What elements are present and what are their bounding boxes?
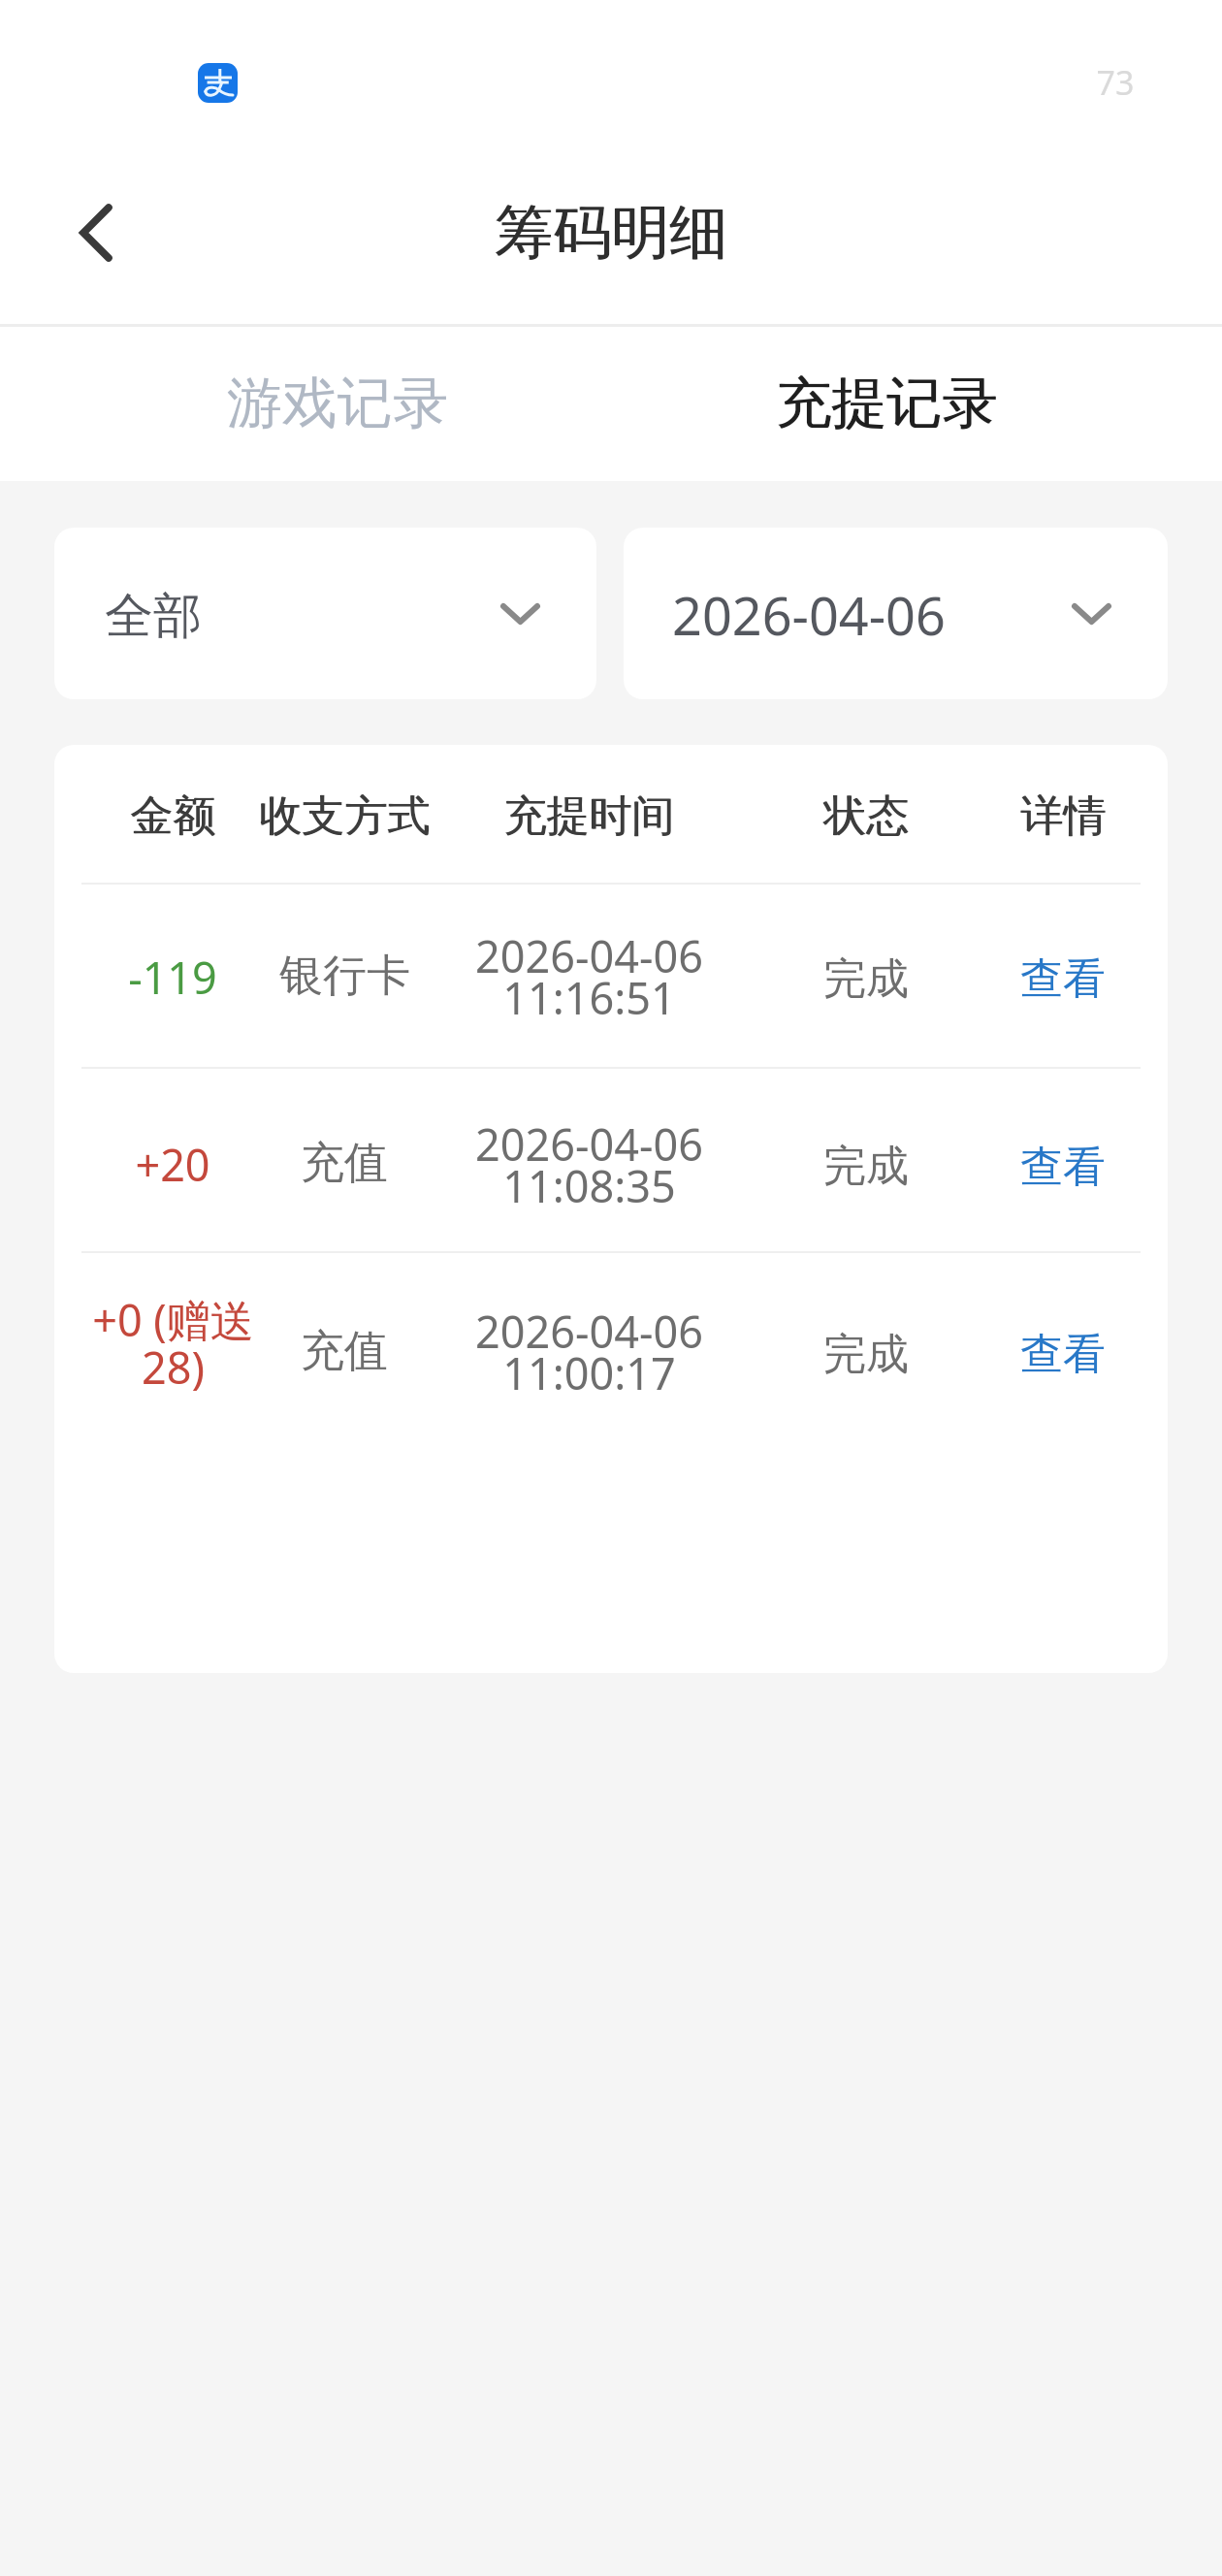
staticText: 充提记录 — [776, 369, 997, 438]
staticText: 详情 — [966, 789, 1160, 843]
staticText: 收支方式 — [239, 789, 452, 843]
staticText: 2026-04-06 11:16:51 — [475, 926, 703, 1027]
staticText: +0 (赠送 — [92, 1290, 254, 1349]
staticText: 完成 — [823, 1328, 909, 1381]
button[interactable]: 全部 — [54, 528, 596, 699]
staticText: 充值 — [301, 1136, 388, 1191]
button[interactable]: 查看 — [1005, 935, 1121, 1022]
button[interactable]: 充提记录 — [612, 325, 1161, 481]
staticText: 2026-04-06 11:00:17 — [475, 1302, 703, 1402]
button[interactable]: +20 — [54, 1069, 1168, 1254]
button[interactable]: Back — [38, 175, 154, 291]
staticText: 详情 — [967, 789, 1161, 843]
button[interactable]: -119 — [54, 881, 1168, 1067]
staticText: 游戏记录 — [227, 369, 448, 438]
staticText: 查看 — [1020, 1328, 1106, 1381]
button[interactable]: 查看 — [1005, 1123, 1121, 1210]
staticText: 查看 — [1020, 952, 1106, 1006]
staticText: 完成 — [823, 1140, 909, 1193]
staticText: 2026-04-06 — [672, 579, 946, 651]
staticText: 73 — [1071, 60, 1160, 105]
staticText: 2026-04-06 11:08:35 — [475, 1114, 703, 1215]
staticText: 收支方式 — [238, 789, 451, 843]
staticText: 金额 — [72, 789, 275, 843]
button[interactable]: +0 (赠送 — [54, 1256, 1168, 1442]
staticText: 28) — [142, 1337, 205, 1397]
staticText: +20 — [135, 1135, 210, 1194]
staticText: 筹码明细 — [1, 196, 1222, 270]
staticText: 查看 — [1020, 1141, 1106, 1194]
button[interactable]: 游戏记录 — [63, 325, 612, 481]
button[interactable]: 查看 — [1005, 1310, 1121, 1398]
staticText: 充值 — [301, 1324, 388, 1379]
staticText: 充提时间 — [444, 789, 735, 843]
staticText: 金额 — [71, 789, 274, 843]
button[interactable]: 2026-04-06 — [624, 528, 1168, 699]
staticText: 筹码明细 — [0, 196, 1222, 270]
staticText: 全部 — [105, 586, 202, 647]
staticText: -119 — [128, 948, 217, 1007]
staticText: 状态 — [770, 789, 964, 843]
staticText: 充提记录 — [777, 369, 998, 438]
button[interactable]: Alipay — [198, 63, 238, 103]
staticText: 状态 — [769, 789, 963, 843]
staticText: 银行卡 — [279, 949, 410, 1004]
staticText: 充提时间 — [443, 789, 734, 843]
staticText: 完成 — [823, 952, 909, 1006]
